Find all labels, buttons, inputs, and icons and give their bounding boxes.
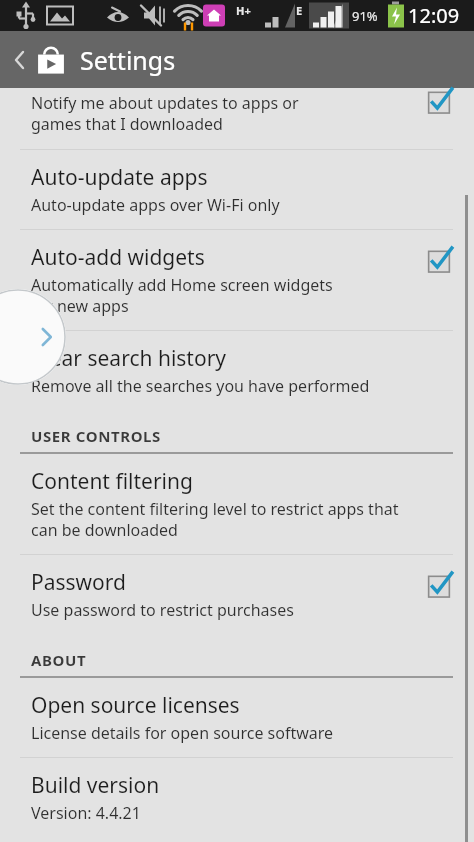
button[interactable]: Back <box>0 31 474 88</box>
button[interactable]: Open source licenses <box>0 678 474 757</box>
staticText: Remove all the searches you have perform… <box>31 375 370 397</box>
button[interactable]: Open navigation drawer <box>0 289 66 385</box>
staticText: USER CONTROLS <box>31 426 161 446</box>
staticText: Auto-update apps <box>31 163 208 192</box>
staticText: Open source licenses <box>31 691 240 720</box>
staticText: Auto-add widgets <box>31 243 205 272</box>
button[interactable]: Notify me about updates to apps or games… <box>0 88 474 149</box>
staticText: Automatically add Home screen widgets fo… <box>31 274 333 317</box>
button[interactable]: Content filtering <box>0 454 474 554</box>
staticText: Version: 4.4.21 <box>31 802 141 824</box>
staticText: Clear search history <box>31 344 227 373</box>
button[interactable]: Clear search history <box>0 331 474 410</box>
staticText: Content filtering <box>31 467 193 496</box>
staticText: E <box>296 3 303 18</box>
staticText: License details for open source software <box>31 722 334 744</box>
button[interactable]: Auto-add widgets <box>0 230 474 330</box>
staticText: 12:09 <box>408 2 460 29</box>
staticText: Notify me about updates to apps or games… <box>31 92 299 135</box>
staticText: H+ <box>236 3 251 18</box>
staticText: Build version <box>31 771 160 800</box>
staticText: ABOUT <box>31 650 87 670</box>
button[interactable]: Password <box>0 555 474 634</box>
other: Google Play Store <box>34 43 68 77</box>
staticText: Auto-update apps over Wi-Fi only <box>31 194 280 216</box>
button[interactable]: Toggle setting <box>422 243 456 277</box>
button[interactable]: Auto-update apps <box>0 150 474 229</box>
staticText: 91% <box>352 7 378 25</box>
button[interactable]: Toggle setting <box>422 568 456 602</box>
button[interactable]: Toggle setting <box>422 84 456 118</box>
staticText: Password <box>31 568 126 597</box>
staticText: Use password to restrict purchases <box>31 599 294 621</box>
other: Back <box>6 46 34 74</box>
button[interactable]: Build version <box>0 758 474 837</box>
staticText: Set the content filtering level to restr… <box>31 498 399 541</box>
staticText: Settings <box>80 43 176 77</box>
